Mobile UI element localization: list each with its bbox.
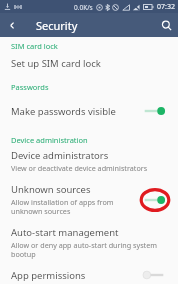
button[interactable]: Back: [0, 13, 24, 37]
button[interactable]: Device administrators: [0, 146, 178, 176]
button[interactable]: Toggle off: [140, 269, 170, 281]
staticText: App permissions: [11, 269, 86, 281]
staticText: Set up SIM card lock: [11, 57, 101, 70]
staticText: Unknown sources: [11, 183, 91, 196]
staticText: Device administration: [11, 135, 88, 145]
button[interactable]: Set up SIM card lock: [0, 52, 178, 75]
staticText: View or deactivate device administrators: [11, 163, 148, 173]
staticText: Allow or deny app auto-start during syst…: [11, 240, 157, 259]
button[interactable]: Search: [154, 13, 178, 37]
staticText: 07:32: [157, 2, 175, 12]
staticText: Auto-start management: [11, 226, 119, 239]
staticText: SIM card lock: [11, 41, 58, 51]
staticText: Allow installation of apps from unknown …: [11, 197, 114, 216]
staticText: Device administrators: [11, 149, 109, 162]
staticText: Make passwords visible: [11, 105, 116, 118]
button[interactable]: Make passwords visible: [0, 93, 178, 129]
button[interactable]: App permissions: [0, 266, 178, 284]
staticText: Security: [36, 18, 78, 33]
button[interactable]: Auto-start management: [0, 223, 178, 262]
button[interactable]: Toggle on: [140, 98, 170, 124]
button[interactable]: Toggle on: [140, 187, 170, 213]
staticText: 0.0K/s: [74, 3, 93, 12]
button[interactable]: Unknown sources: [0, 180, 178, 219]
staticText: Passwords: [11, 82, 49, 92]
